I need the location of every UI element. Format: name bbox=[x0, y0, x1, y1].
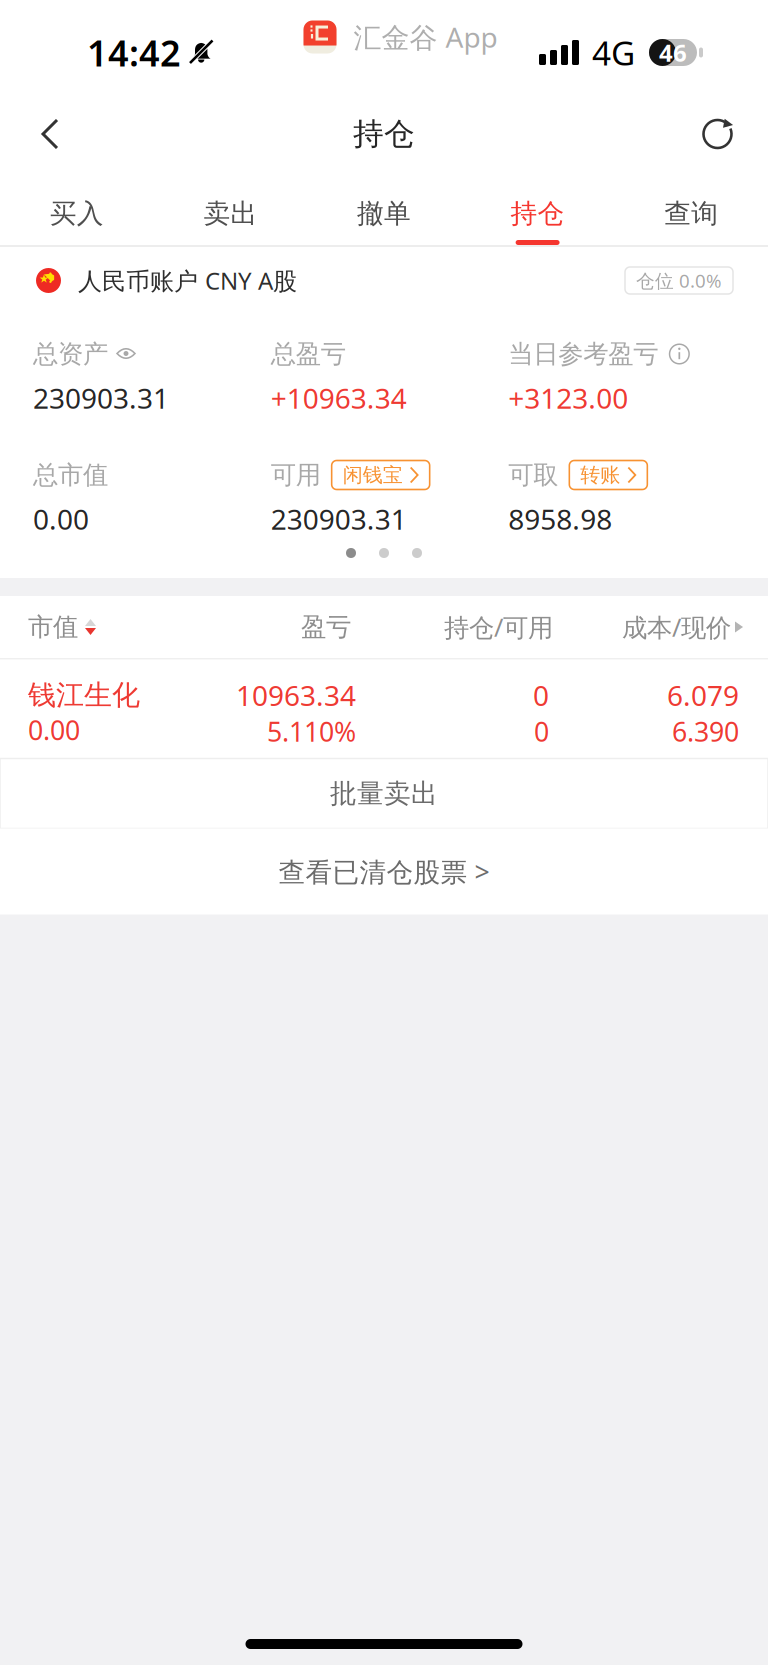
button[interactable]: 仓位 0.0% bbox=[625, 267, 733, 294]
staticText: 钱江生化 bbox=[28, 678, 140, 712]
staticText: 闲钱宝 bbox=[343, 463, 403, 487]
button[interactable]: 查看已清仓股票 > bbox=[0, 828, 768, 914]
staticText: 8958.98 bbox=[508, 500, 612, 538]
staticText: 当日参考盈亏 bbox=[508, 338, 658, 369]
staticText: 持仓 bbox=[353, 115, 415, 153]
button[interactable]: 刷新 bbox=[674, 92, 762, 176]
staticText: 230903.31 bbox=[271, 500, 407, 538]
staticText: 市值 bbox=[28, 611, 78, 642]
staticText: 盈亏 bbox=[301, 611, 351, 642]
staticText: 4G bbox=[592, 30, 635, 75]
staticText: +3123.00 bbox=[508, 379, 628, 417]
button[interactable]: 撤单 bbox=[307, 176, 461, 245]
staticText: 持仓 bbox=[511, 197, 565, 230]
button[interactable]: 卖出 bbox=[154, 176, 307, 245]
staticText: 查看已清仓股票 > bbox=[278, 854, 489, 889]
staticText: 查询 bbox=[664, 197, 718, 230]
staticText: 46 bbox=[659, 37, 687, 68]
staticText: 成本/现价 bbox=[622, 610, 731, 644]
staticText: 5.110% bbox=[267, 714, 356, 749]
staticText: 14:42 bbox=[87, 29, 181, 76]
button[interactable]: 买入 bbox=[0, 176, 154, 245]
staticText: 可用 bbox=[271, 459, 321, 490]
staticText: 6.390 bbox=[672, 714, 739, 749]
staticText: 230903.31 bbox=[33, 379, 169, 417]
staticText: 0 bbox=[533, 676, 549, 714]
staticText: 0.00 bbox=[33, 500, 89, 538]
staticText: 0 bbox=[534, 714, 549, 749]
button[interactable]: 钱江生化 bbox=[0, 659, 768, 758]
staticText: 总市值 bbox=[33, 459, 108, 490]
staticText: 0.00 bbox=[28, 712, 80, 748]
staticText: 转账 bbox=[580, 463, 620, 487]
staticText: 6.079 bbox=[667, 676, 739, 714]
staticText: 人民币账户 CNY A股 bbox=[78, 265, 297, 296]
button[interactable]: 返回 bbox=[6, 92, 94, 176]
staticText: 仓位 0.0% bbox=[636, 268, 722, 293]
button[interactable]: 闲钱宝 bbox=[332, 460, 430, 489]
staticText: +10963.34 bbox=[271, 379, 407, 417]
staticText: 买入 bbox=[50, 197, 104, 230]
button[interactable]: 批量卖出 bbox=[0, 758, 768, 828]
button[interactable]: 查询 bbox=[614, 176, 768, 245]
staticText: 总资产 bbox=[33, 338, 108, 369]
staticText: 批量卖出 bbox=[330, 777, 438, 810]
staticText: 撤单 bbox=[357, 197, 411, 230]
button[interactable]: 转账 bbox=[569, 460, 647, 489]
button[interactable]: 持仓 bbox=[461, 176, 614, 245]
staticText: 10963.34 bbox=[236, 676, 356, 714]
staticText: 总盈亏 bbox=[271, 338, 346, 369]
staticText: 持仓/可用 bbox=[444, 610, 553, 644]
staticText: 可取 bbox=[508, 459, 558, 490]
staticText: 汇金谷 App bbox=[353, 18, 497, 56]
staticText: 卖出 bbox=[203, 197, 257, 230]
